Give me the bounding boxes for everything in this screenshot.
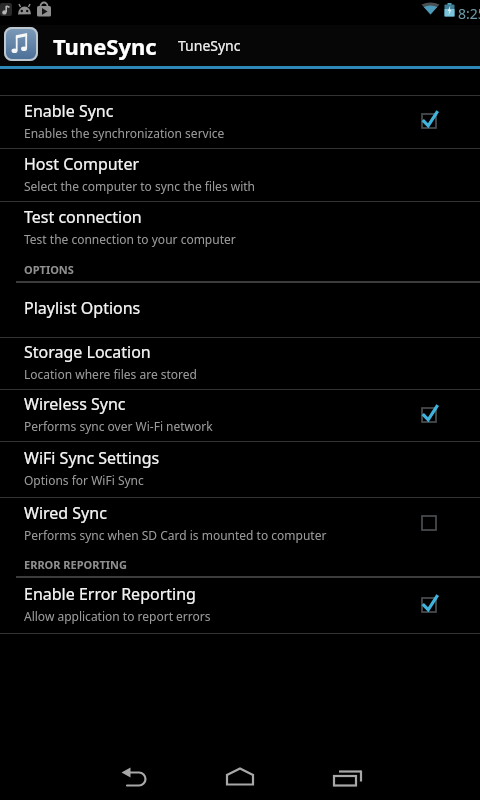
staticText: Test the connection to your computer: [24, 231, 236, 247]
staticText: Storage Location: [24, 341, 151, 363]
staticText: Location where files are stored: [24, 366, 197, 382]
staticText: 8:25: [458, 4, 480, 23]
staticText: TuneSync: [178, 36, 241, 55]
button[interactable]: [0, 745, 160, 800]
button[interactable]: Enable Error Reporting: [0, 578, 480, 633]
staticText: Allow application to report errors: [24, 608, 211, 624]
button[interactable]: Storage Location: [0, 338, 480, 389]
button[interactable]: Test connection: [0, 202, 480, 255]
staticText: Host Computer: [24, 153, 140, 175]
button[interactable]: Host Computer: [0, 149, 480, 201]
staticText: Performs sync over Wi-Fi network: [24, 418, 213, 434]
button[interactable]: [160, 745, 320, 800]
staticText: Wired Sync: [24, 502, 107, 524]
staticText: Enable Error Reporting: [24, 583, 196, 605]
staticText: Playlist Options: [24, 297, 141, 319]
staticText: Enable Sync: [24, 100, 114, 122]
button[interactable]: Wireless Sync: [0, 390, 480, 441]
staticText: Wireless Sync: [24, 393, 126, 415]
staticText: ERROR REPORTING: [24, 557, 128, 572]
staticText: OPTIONS: [24, 262, 74, 277]
staticText: Enables the synchronization service: [24, 125, 225, 141]
button[interactable]: [320, 745, 480, 800]
staticText: Test connection: [24, 206, 142, 228]
staticText: WiFi Sync Settings: [24, 447, 160, 469]
button[interactable]: Playlist Options: [0, 283, 480, 337]
button[interactable]: Wired Sync: [0, 498, 480, 550]
button[interactable]: Enable Sync: [0, 96, 480, 148]
staticText: TuneSync: [53, 31, 157, 61]
staticText: Select the computer to sync the files wi…: [24, 178, 256, 194]
button[interactable]: WiFi Sync Settings: [0, 442, 480, 497]
staticText: Options for WiFi Sync: [24, 472, 144, 488]
staticText: Performs sync when SD Card is mounted to…: [24, 527, 327, 543]
